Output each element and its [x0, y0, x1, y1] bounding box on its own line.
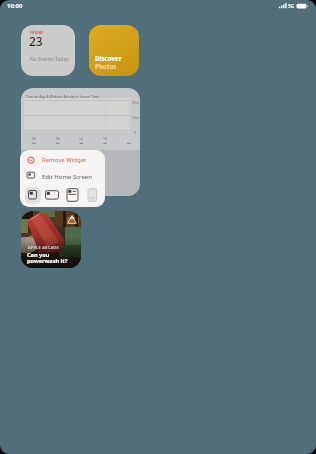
staticText: Can you	[27, 251, 50, 259]
staticText: powerwash it?	[27, 257, 68, 265]
staticText: 12	[79, 136, 83, 141]
button[interactable]: Edit Home Screen	[20, 168, 105, 184]
staticText: FRIDAY	[30, 30, 44, 35]
button[interactable]: Turn on App & Website Activity in Screen…	[21, 88, 140, 196]
staticText: 0	[134, 130, 136, 135]
button[interactable]: APPLE ARCADE	[21, 211, 81, 268]
staticText: 5G	[288, 3, 294, 9]
staticText: 06	[56, 136, 60, 141]
staticText: APPLE ARCADE	[28, 245, 59, 250]
staticText: 30m	[132, 115, 140, 120]
button[interactable]	[25, 187, 41, 204]
staticText: No Events Today	[30, 56, 69, 63]
staticText: 10:00	[7, 2, 23, 10]
staticText: Edit Home Screen	[42, 173, 92, 181]
button[interactable]: Remove Widget	[20, 150, 105, 168]
staticText: 23	[29, 33, 43, 49]
button[interactable]	[64, 187, 81, 204]
button[interactable]: FRIDAY	[21, 25, 75, 76]
staticText: Remove Widget	[42, 156, 87, 164]
staticText: 18	[103, 136, 107, 141]
button[interactable]	[43, 187, 60, 204]
button[interactable]	[84, 187, 101, 204]
staticText: Photos	[95, 62, 117, 70]
staticText: 00	[32, 136, 36, 141]
staticText: Discover	[95, 54, 122, 62]
staticText: 60m	[132, 100, 140, 105]
button[interactable]: Discover	[89, 25, 139, 76]
staticText: Turn on App & Website Activity in Screen…	[26, 94, 100, 99]
